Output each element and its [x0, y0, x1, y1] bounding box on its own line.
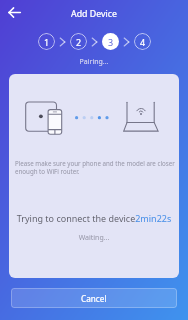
button[interactable]: 3 — [102, 33, 119, 50]
staticText: Pairing... — [0, 57, 188, 67]
staticText: 1 — [44, 36, 50, 48]
button[interactable]: Back — [3, 1, 25, 23]
staticText: 4 — [140, 36, 146, 48]
button[interactable]: 2 — [70, 33, 87, 50]
staticText: Waiting... — [9, 233, 179, 243]
button[interactable]: 1 — [38, 33, 55, 50]
staticText: Please make sure your phone and the mode… — [15, 159, 179, 175]
button[interactable]: Cancel — [11, 288, 177, 308]
staticText: 3 — [108, 36, 114, 48]
staticText: Add Device — [0, 8, 188, 20]
staticText: Trying to connect the device2min22s — [9, 212, 179, 224]
staticText: 2 — [76, 36, 82, 48]
staticText: Cancel — [81, 293, 107, 304]
button[interactable]: 4 — [134, 33, 151, 50]
